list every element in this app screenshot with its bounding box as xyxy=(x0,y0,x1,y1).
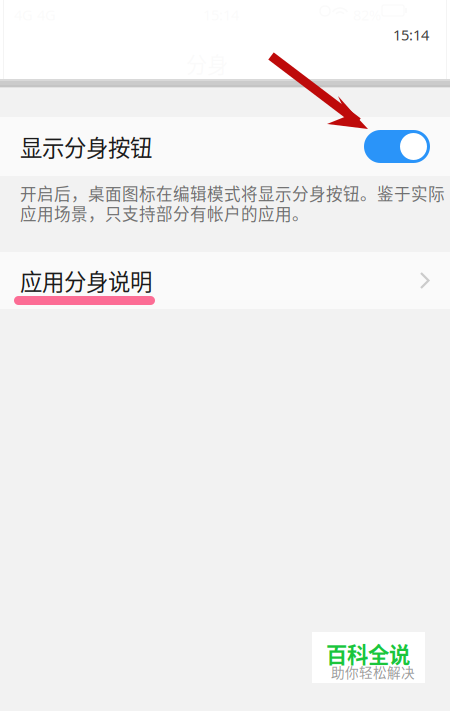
staticText: 显示分身按钮 xyxy=(20,130,152,163)
button[interactable]: 显示分身按钮 xyxy=(0,117,450,176)
staticText: 应用分身说明 xyxy=(20,264,152,297)
staticText: 15:14 xyxy=(393,25,429,44)
staticText: 应用场景，只支持部分有帐户的应用。 xyxy=(20,201,309,225)
staticText: 开启后，桌面图标在编辑模式将显示分身按钮。鉴于实际 xyxy=(20,181,445,205)
staticText: 助你轻松解决 xyxy=(331,662,415,682)
staticText: 百科全说 xyxy=(326,638,410,669)
button[interactable]: 应用分身说明 xyxy=(0,252,450,309)
